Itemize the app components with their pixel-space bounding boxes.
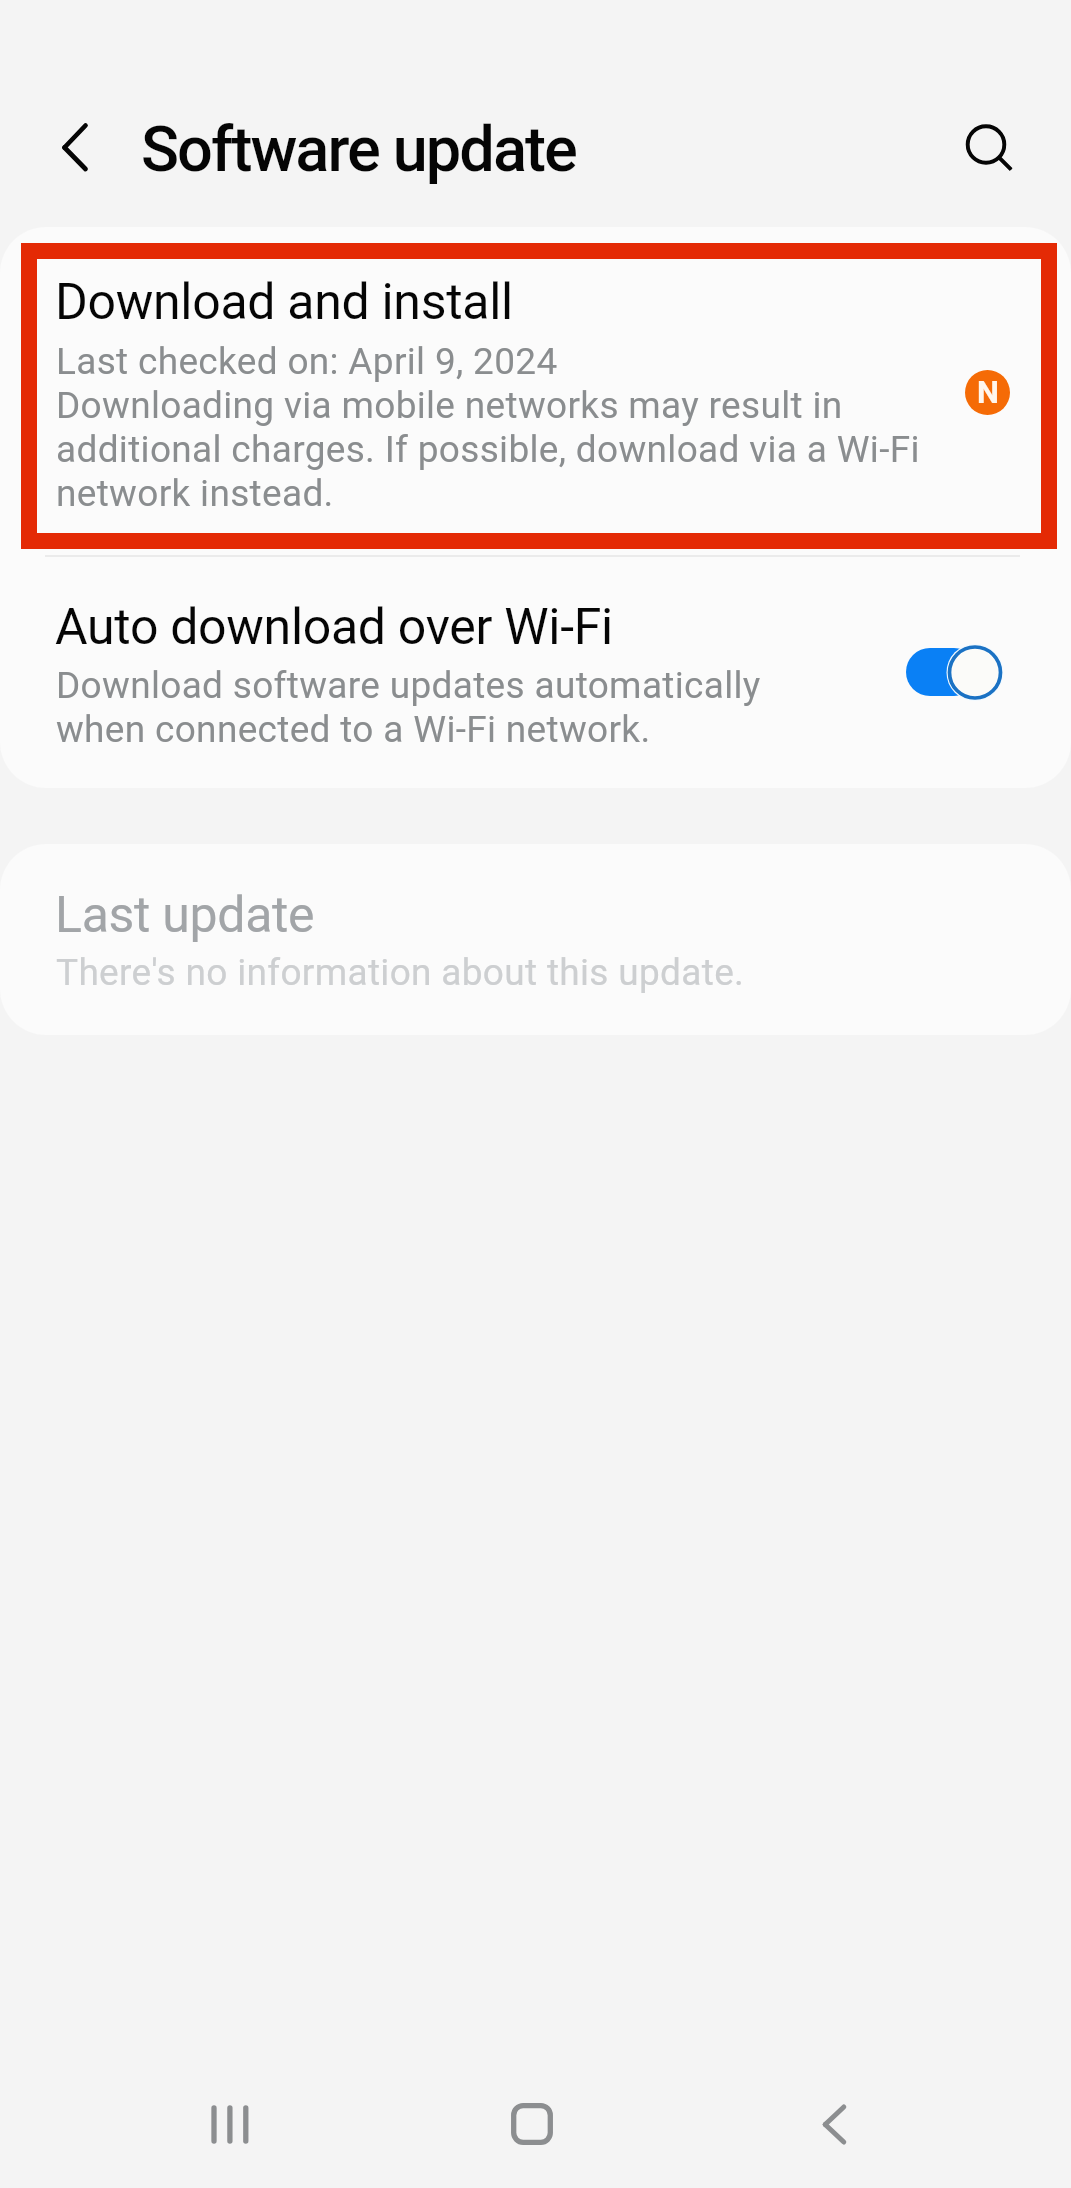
button[interactable]: Home xyxy=(472,2064,592,2184)
button[interactable]: Recent apps xyxy=(169,2065,289,2185)
button[interactable]: Back xyxy=(774,2065,894,2185)
button[interactable]: Search xyxy=(950,108,1022,180)
button[interactable]: Download and install xyxy=(0,227,1071,556)
button[interactable]: Last update xyxy=(0,844,1071,1035)
button[interactable]: Auto download over Wi-Fi xyxy=(0,558,1071,788)
staticText: Last update xyxy=(55,886,315,945)
staticText: Download software updates automatically … xyxy=(56,664,761,751)
button[interactable]: Navigate up xyxy=(40,112,112,184)
staticText: Download and install xyxy=(55,273,513,332)
staticText: N xyxy=(977,374,999,410)
staticText: Last checked on: April 9, 2024 Downloadi… xyxy=(56,340,920,515)
staticText: There's no information about this update… xyxy=(56,951,745,994)
staticText: Software update xyxy=(141,113,576,187)
button[interactable]: Auto download over Wi-Fi, on xyxy=(890,632,1020,712)
staticText: Auto download over Wi-Fi xyxy=(55,598,613,657)
